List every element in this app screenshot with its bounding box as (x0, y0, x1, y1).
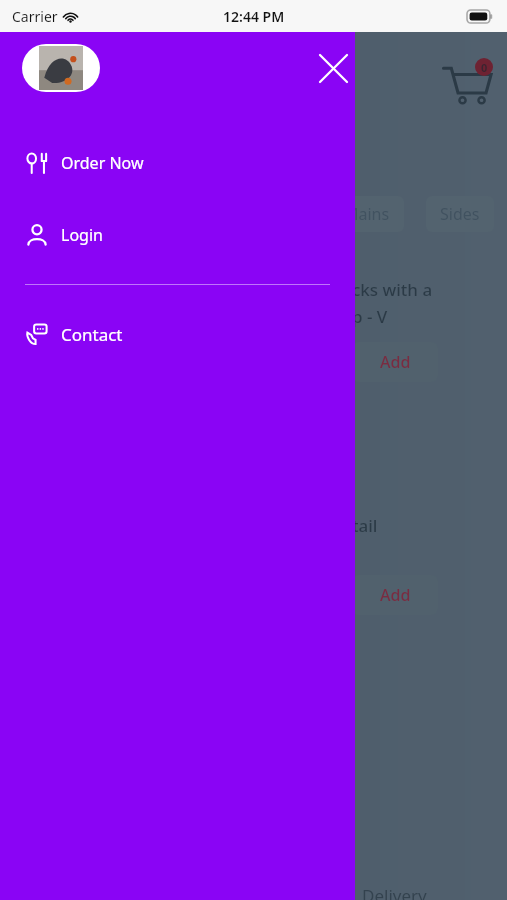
staticText: Contact (61, 323, 123, 346)
staticText: tail (352, 514, 378, 537)
button[interactable]: Sides (440, 203, 480, 225)
button[interactable]: Close (312, 47, 354, 89)
button[interactable] (22, 44, 100, 92)
staticText: Add (380, 584, 411, 606)
staticText: p - V (352, 305, 388, 328)
staticText: cks with a (352, 278, 433, 301)
button[interactable]: Cart (439, 56, 495, 112)
button[interactable]: Contact (0, 311, 355, 357)
staticText: Login (61, 224, 103, 246)
button[interactable]: Add (352, 342, 438, 382)
staticText: Sides (440, 203, 480, 225)
button[interactable]: Order Now (0, 140, 355, 186)
button[interactable]: Add (352, 575, 438, 615)
staticText: Add (380, 351, 411, 373)
button[interactable]: Mains (344, 203, 390, 225)
staticText: Mains (344, 203, 390, 225)
staticText: Carrier (12, 7, 58, 26)
staticText: Delivery (362, 884, 427, 900)
staticText: 12:44 PM (223, 7, 285, 26)
staticText: 0 (481, 60, 488, 75)
staticText: Order Now (61, 152, 144, 174)
button[interactable]: Login (0, 212, 355, 258)
